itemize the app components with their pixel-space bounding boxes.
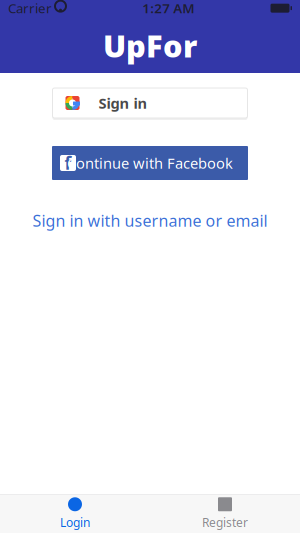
button[interactable]: Sign in <box>52 88 247 120</box>
staticText: Sign in with username or email <box>32 210 267 231</box>
staticText: Login <box>60 514 90 530</box>
button[interactable]: Sign in with username or email <box>22 206 277 235</box>
button[interactable]: Login <box>0 495 150 533</box>
staticText: f <box>64 151 71 174</box>
button[interactable]: f <box>52 146 248 180</box>
staticText: Carrier <box>8 0 52 17</box>
staticText: UpFor <box>103 25 197 66</box>
staticText: Register <box>202 514 248 530</box>
staticText: Continue with Facebook <box>67 153 233 173</box>
staticText: 1:27 AM <box>142 0 194 17</box>
button[interactable]: Register <box>150 495 300 533</box>
staticText: Sign in <box>98 93 147 113</box>
